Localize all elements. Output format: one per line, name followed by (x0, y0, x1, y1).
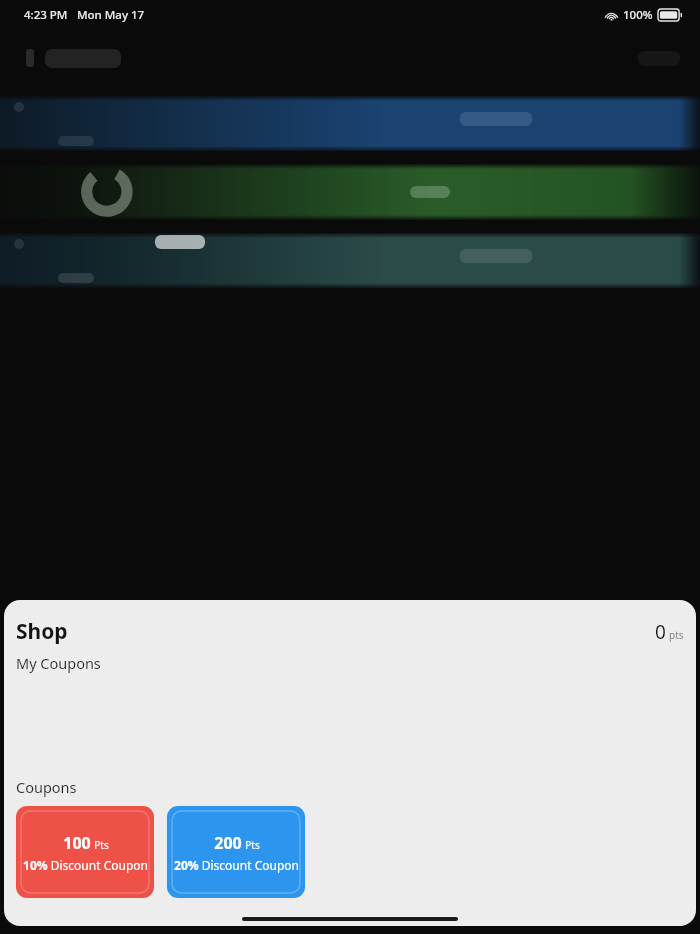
button[interactable]: 200 Pts (167, 806, 305, 898)
button[interactable]: Banner (0, 96, 700, 151)
staticText: 100% (623, 7, 653, 23)
staticText: My Coupons (16, 653, 101, 673)
button[interactable]: Banner (0, 164, 700, 220)
staticText: Coupons (16, 777, 77, 797)
button[interactable]: Banner (0, 233, 700, 288)
staticText: Mon May 17 (77, 7, 145, 23)
staticText: Shop (16, 617, 68, 646)
staticText: 20% Discount Coupon (174, 857, 299, 873)
staticText: 100 Pts (63, 832, 109, 854)
button[interactable]: 100 Pts (16, 806, 154, 898)
button[interactable]: Back (12, 40, 48, 76)
staticText: 10% Discount Coupon (23, 857, 148, 873)
staticText: 200 Pts (214, 832, 260, 854)
staticText: 0 (655, 619, 666, 645)
staticText: pts (669, 628, 684, 642)
staticText: 4:23 PM (24, 7, 68, 23)
